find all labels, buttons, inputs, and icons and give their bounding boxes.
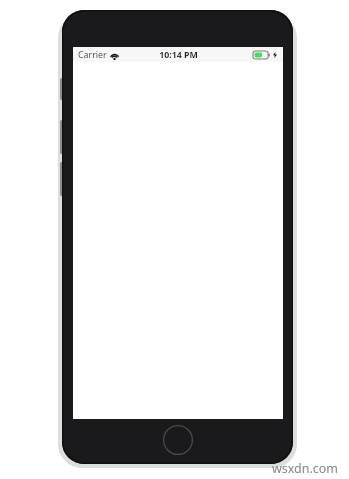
button[interactable]: Home	[160, 422, 196, 458]
button[interactable]: Side button	[60, 78, 63, 100]
staticText: Carrier	[78, 49, 107, 61]
button[interactable]: Battery charging	[253, 51, 278, 59]
button[interactable]	[62, 10, 293, 464]
staticText: wsxdn.com	[272, 460, 338, 476]
staticText: 10:14 PM	[159, 49, 198, 61]
button[interactable]: Side button	[60, 162, 63, 196]
button[interactable]: Carrier	[78, 49, 119, 61]
button[interactable]: Side button	[60, 120, 63, 154]
